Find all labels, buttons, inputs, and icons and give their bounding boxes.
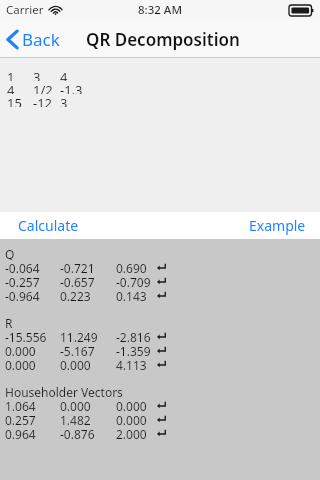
staticText: -12 [33, 94, 53, 107]
staticText: -15.556 [5, 329, 47, 343]
staticText: 8:32 AM [138, 2, 182, 18]
staticText: 0.000 [60, 357, 91, 371]
staticText: 4 [7, 81, 15, 94]
staticText: 0.223 [60, 288, 91, 302]
staticText: R [5, 315, 13, 329]
staticText: 0.690 [116, 260, 147, 274]
staticText: Householder Vectors [5, 384, 123, 398]
staticText: QR Decomposition [86, 28, 240, 51]
button[interactable]: Calculate [0, 212, 97, 239]
staticText: 0.257 [5, 412, 36, 426]
staticText: -0.257 [5, 274, 40, 288]
staticText: 15 [7, 94, 22, 107]
staticText: 3 [60, 94, 68, 107]
staticText: -2.816 [116, 329, 151, 343]
button[interactable]: 1 [0, 58, 320, 212]
staticText: 0.000 [60, 398, 91, 412]
staticText: 0.143 [116, 288, 147, 302]
staticText: -0.721 [60, 260, 95, 274]
staticText: Calculate [18, 216, 79, 235]
staticText: 3 [33, 68, 41, 81]
staticText: -0.657 [60, 274, 95, 288]
button[interactable]: Back [0, 22, 70, 57]
staticText: 1.482 [60, 412, 91, 426]
staticText: -0.709 [116, 274, 151, 288]
staticText: -0.876 [60, 426, 95, 440]
staticText: 2.000 [116, 426, 147, 440]
staticText: 0.000 [116, 412, 147, 426]
staticText: 1/2 [33, 81, 53, 94]
staticText: 1.064 [5, 398, 36, 412]
staticText: 1 [7, 68, 15, 81]
staticText: -1.3 [60, 81, 83, 94]
staticText: Example [249, 216, 306, 235]
staticText: Q [5, 246, 15, 260]
staticText: -5.167 [60, 343, 95, 357]
staticText: -0.964 [5, 288, 40, 302]
staticText: 0.000 [116, 398, 147, 412]
staticText: 4.113 [116, 357, 147, 371]
staticText: 0.000 [5, 357, 36, 371]
staticText: 0.000 [5, 343, 36, 357]
button[interactable]: Example [235, 212, 320, 239]
staticText: 4 [60, 68, 68, 81]
staticText: 0.964 [5, 426, 36, 440]
staticText: -0.064 [5, 260, 40, 274]
staticText: Back [22, 28, 60, 51]
staticText: 11.249 [60, 329, 98, 343]
staticText: Carrier [6, 2, 44, 18]
staticText: -1.359 [116, 343, 151, 357]
